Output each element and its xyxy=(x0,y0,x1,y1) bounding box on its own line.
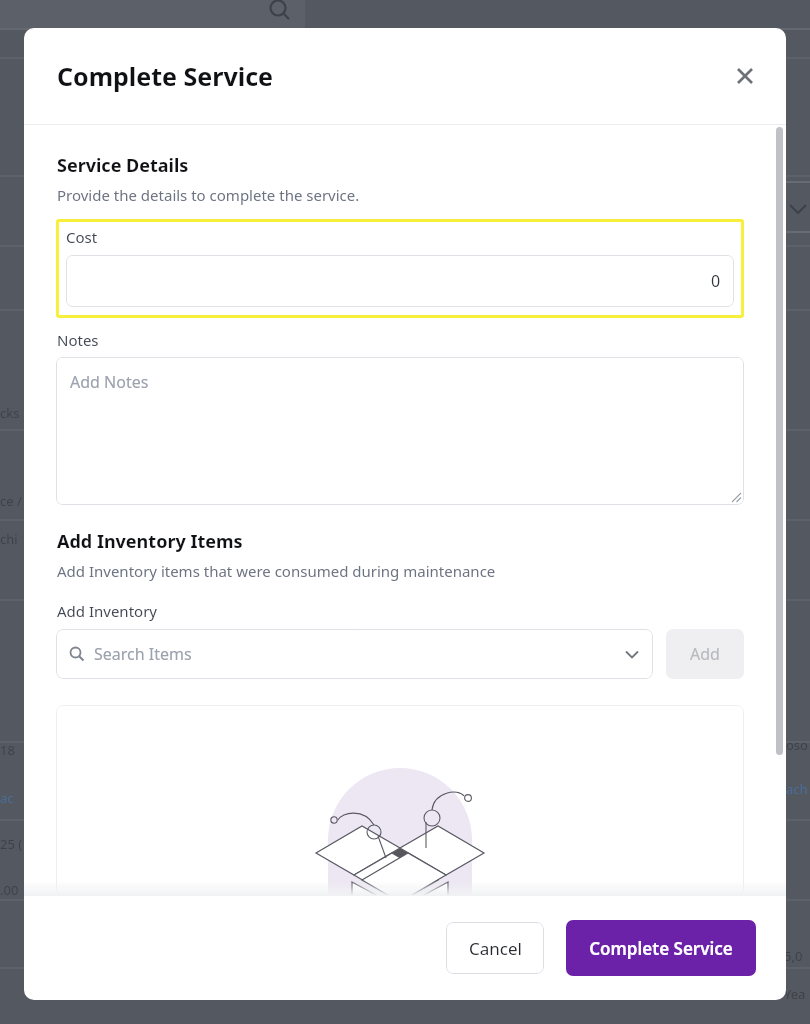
staticText: ach xyxy=(786,780,808,798)
button[interactable]: Cancel xyxy=(446,922,544,974)
staticText: Provide the details to complete the serv… xyxy=(57,185,360,205)
staticText: Cancel xyxy=(469,937,522,960)
staticText: 25 ( xyxy=(0,835,23,853)
staticText: .00 xyxy=(0,881,19,899)
staticText: Complete Service xyxy=(589,937,733,960)
staticText: Yea xyxy=(784,985,806,1003)
staticText: Add Inventory Items xyxy=(57,529,243,554)
staticText: Search Items xyxy=(94,643,192,665)
staticText: Add xyxy=(690,643,720,665)
button[interactable]: Search Items xyxy=(56,629,653,679)
staticText: 18 xyxy=(0,741,15,759)
staticText: Cost xyxy=(66,227,98,247)
button[interactable]: Add xyxy=(666,629,744,679)
button[interactable]: Add Notes xyxy=(56,357,744,505)
staticText: ac xyxy=(0,789,14,807)
button[interactable]: Complete Service xyxy=(566,920,756,976)
staticText: cks xyxy=(0,404,20,422)
staticText: chi xyxy=(0,530,18,548)
staticText: 5,0 xyxy=(784,947,803,965)
staticText: 5,0 xyxy=(784,742,803,760)
staticText: Complete Service xyxy=(57,59,273,93)
staticText: Add Inventory xyxy=(57,601,157,621)
staticText: ce / xyxy=(0,492,22,510)
staticText: Notes xyxy=(57,330,99,350)
button[interactable]: 0 xyxy=(66,255,734,307)
staticText: Service Details xyxy=(57,153,189,178)
staticText: oso xyxy=(786,736,808,754)
button[interactable]: Close xyxy=(726,57,764,95)
staticText: Add Notes xyxy=(70,371,149,393)
staticText: 0 xyxy=(711,270,721,292)
staticText: Add Inventory items that were consumed d… xyxy=(57,561,496,581)
